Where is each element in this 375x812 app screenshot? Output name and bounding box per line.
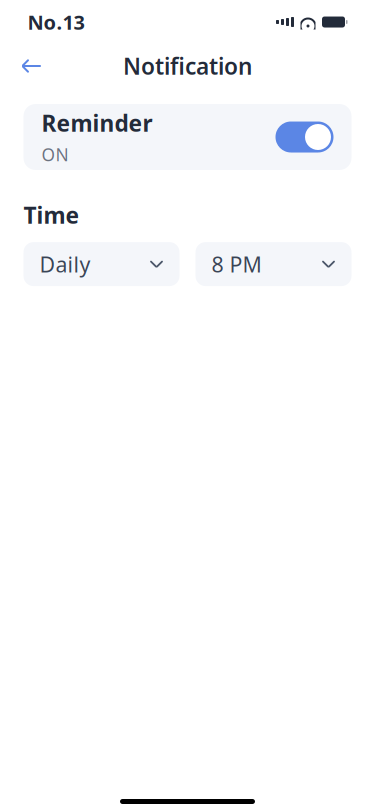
staticText: No.13: [27, 9, 84, 35]
button[interactable]: Reminder: [23, 104, 351, 170]
staticText: Daily: [39, 250, 90, 278]
button[interactable]: 8 PM: [195, 242, 351, 286]
staticText: Notification: [123, 51, 252, 81]
button[interactable]: Daily: [23, 242, 179, 286]
button[interactable]: Back: [9, 44, 53, 88]
staticText: 8 PM: [211, 250, 261, 278]
staticText: ON: [41, 143, 68, 166]
staticText: Time: [23, 200, 79, 230]
staticText: Reminder: [41, 108, 152, 138]
